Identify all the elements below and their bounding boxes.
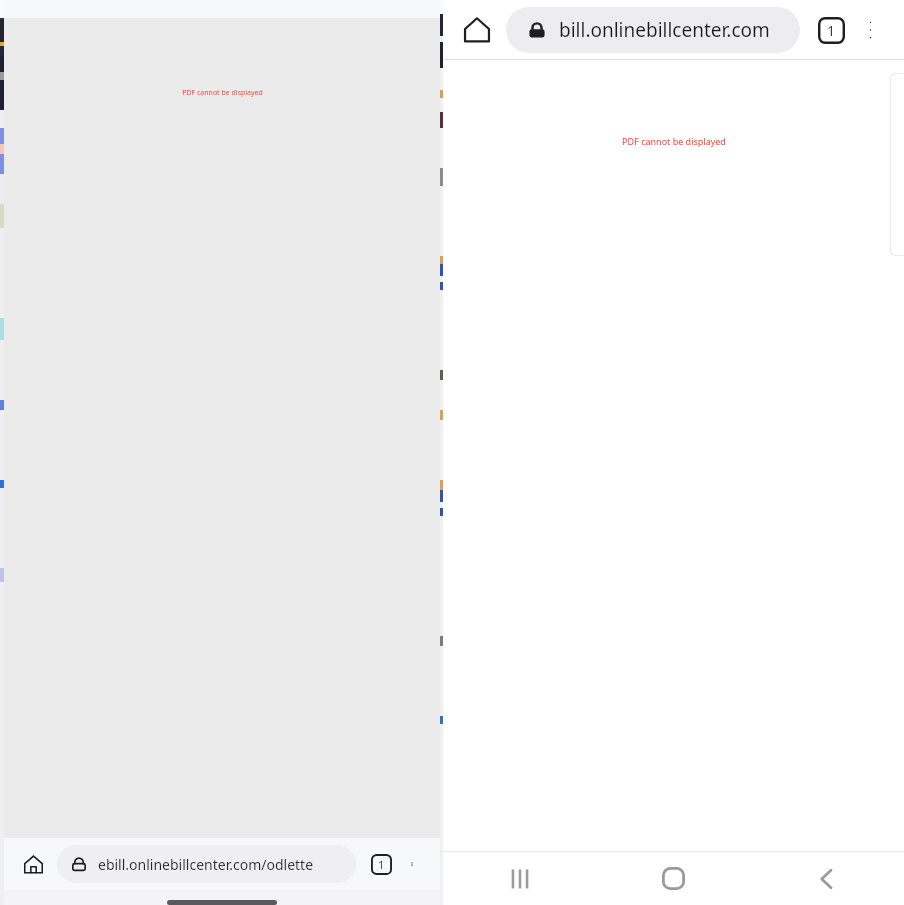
staticText: PDF cannot be displayed — [182, 88, 263, 98]
staticText: bill.onlinebillcenter.com — [559, 17, 770, 43]
button[interactable]: ebill.onlinebillcenter.com/odlette — [57, 845, 356, 883]
button[interactable]: bill.onlinebillcenter.com — [506, 7, 800, 53]
button[interactable]: Recents — [443, 852, 596, 905]
button[interactable]: More options — [850, 10, 890, 50]
button[interactable]: Home — [596, 852, 750, 905]
staticText: 1 — [827, 21, 836, 40]
staticText: 1 — [378, 857, 385, 872]
button[interactable]: More options — [396, 848, 428, 880]
button[interactable]: Home — [457, 10, 497, 50]
button[interactable]: Tabs — [812, 11, 850, 49]
staticText: ebill.onlinebillcenter.com/odlette — [98, 855, 314, 874]
staticText: PDF cannot be displayed — [622, 135, 726, 147]
button[interactable]: Tabs — [366, 849, 396, 879]
button[interactable]: Home — [16, 847, 50, 881]
button[interactable]: Back — [750, 852, 904, 905]
